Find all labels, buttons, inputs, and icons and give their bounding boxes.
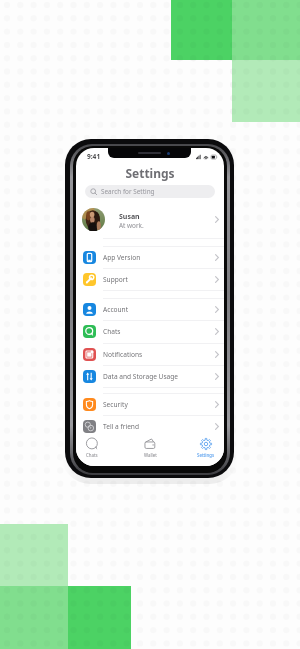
- button[interactable]: Susan: [76, 203, 224, 235]
- staticText: Account: [103, 305, 129, 314]
- staticText: Susan: [119, 212, 140, 222]
- staticText: Settings: [76, 165, 224, 181]
- staticText: Data and Storage Usage: [103, 372, 179, 381]
- staticText: Notifications: [103, 350, 143, 359]
- button[interactable]: Chats: [76, 320, 224, 342]
- button[interactable]: Chats: [76, 436, 114, 462]
- staticText: Chats: [86, 452, 98, 458]
- staticText: Chats: [103, 327, 121, 336]
- button[interactable]: Settings: [184, 436, 224, 462]
- staticText: App Version: [103, 253, 141, 262]
- button[interactable]: App Version: [76, 246, 224, 268]
- button[interactable]: Data and Storage Usage: [76, 365, 224, 387]
- button[interactable]: Search for Setting: [85, 185, 215, 198]
- staticText: Settings: [197, 452, 215, 458]
- button[interactable]: Security: [76, 393, 224, 415]
- staticText: Tell a friend: [103, 422, 139, 431]
- button[interactable]: Wallet: [128, 436, 172, 462]
- staticText: 9:41: [87, 152, 101, 161]
- staticText: Wallet: [144, 452, 157, 458]
- button[interactable]: Notifications: [76, 343, 224, 365]
- staticText: Security: [103, 400, 128, 409]
- button[interactable]: Account: [76, 298, 224, 320]
- button[interactable]: Tell a friend: [76, 415, 224, 437]
- staticText: Search for Setting: [101, 187, 155, 196]
- staticText: At work.: [119, 221, 144, 230]
- staticText: Support: [103, 275, 128, 284]
- button[interactable]: Support: [76, 268, 224, 290]
